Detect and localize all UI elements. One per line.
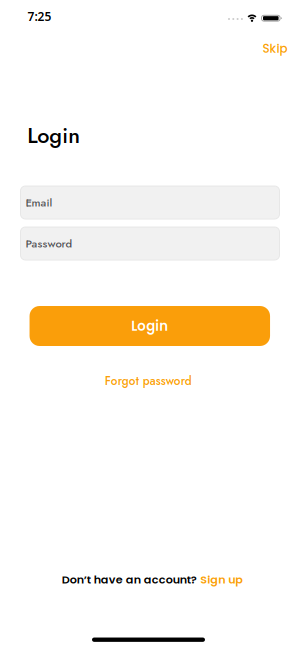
staticText: Email — [25, 194, 52, 211]
button[interactable]: Don’t have an account? — [62, 572, 243, 587]
staticText: Login — [131, 317, 168, 335]
staticText: Login — [27, 120, 80, 151]
button[interactable]: Password — [20, 226, 280, 260]
staticText: Forgot password — [105, 372, 192, 389]
staticText: Sign up — [200, 572, 243, 587]
button[interactable]: Forgot password — [105, 372, 192, 389]
staticText: Password — [25, 235, 72, 252]
staticText: Don’t have an account? — [62, 572, 197, 587]
staticText: Skip — [262, 40, 287, 57]
button[interactable]: Login — [30, 306, 270, 346]
staticText: 7:25 — [27, 8, 51, 24]
button[interactable]: Email — [20, 185, 280, 219]
button[interactable]: Skip — [262, 40, 287, 57]
